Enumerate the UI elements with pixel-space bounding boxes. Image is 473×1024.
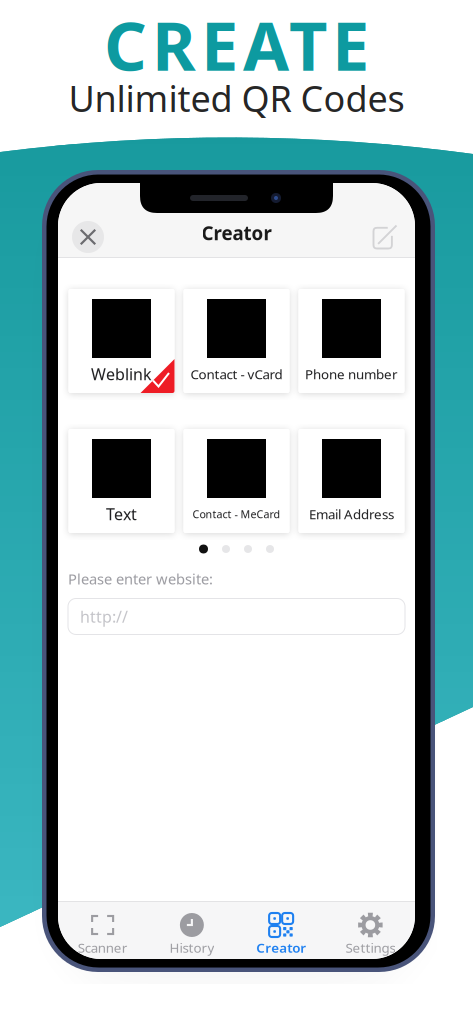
button[interactable]: Weblink bbox=[68, 289, 174, 393]
staticText: Creator bbox=[256, 939, 306, 956]
staticText: Email Address bbox=[309, 505, 394, 523]
staticText: Contact - MeCard bbox=[192, 507, 280, 521]
staticText: Unlimited QR Codes bbox=[68, 74, 404, 122]
staticText: http:// bbox=[80, 606, 128, 627]
staticText: Creator bbox=[201, 221, 271, 245]
staticText: Contact - vCard bbox=[190, 365, 282, 383]
button[interactable]: Scanner bbox=[58, 901, 147, 959]
staticText: Weblink bbox=[91, 363, 152, 385]
button[interactable]: Email Address bbox=[298, 429, 404, 533]
button[interactable]: Close bbox=[66, 215, 110, 259]
button[interactable]: History bbox=[147, 901, 236, 959]
button[interactable]: Contact - MeCard bbox=[183, 429, 289, 533]
staticText: Text bbox=[106, 503, 137, 525]
staticText: History bbox=[169, 939, 214, 956]
button[interactable]: Contact - vCard bbox=[183, 289, 289, 393]
button[interactable]: http:// bbox=[68, 598, 405, 634]
button[interactable]: Compose bbox=[363, 215, 407, 259]
staticText: Settings bbox=[345, 939, 395, 956]
button[interactable]: Settings bbox=[326, 901, 415, 959]
staticText: Please enter website: bbox=[68, 569, 213, 588]
staticText: CREATE bbox=[104, 1, 369, 89]
button[interactable]: Creator bbox=[236, 901, 326, 959]
button[interactable]: Phone number bbox=[298, 289, 404, 393]
button[interactable]: Text bbox=[68, 429, 174, 533]
staticText: Scanner bbox=[78, 939, 128, 956]
staticText: Phone number bbox=[305, 365, 398, 383]
